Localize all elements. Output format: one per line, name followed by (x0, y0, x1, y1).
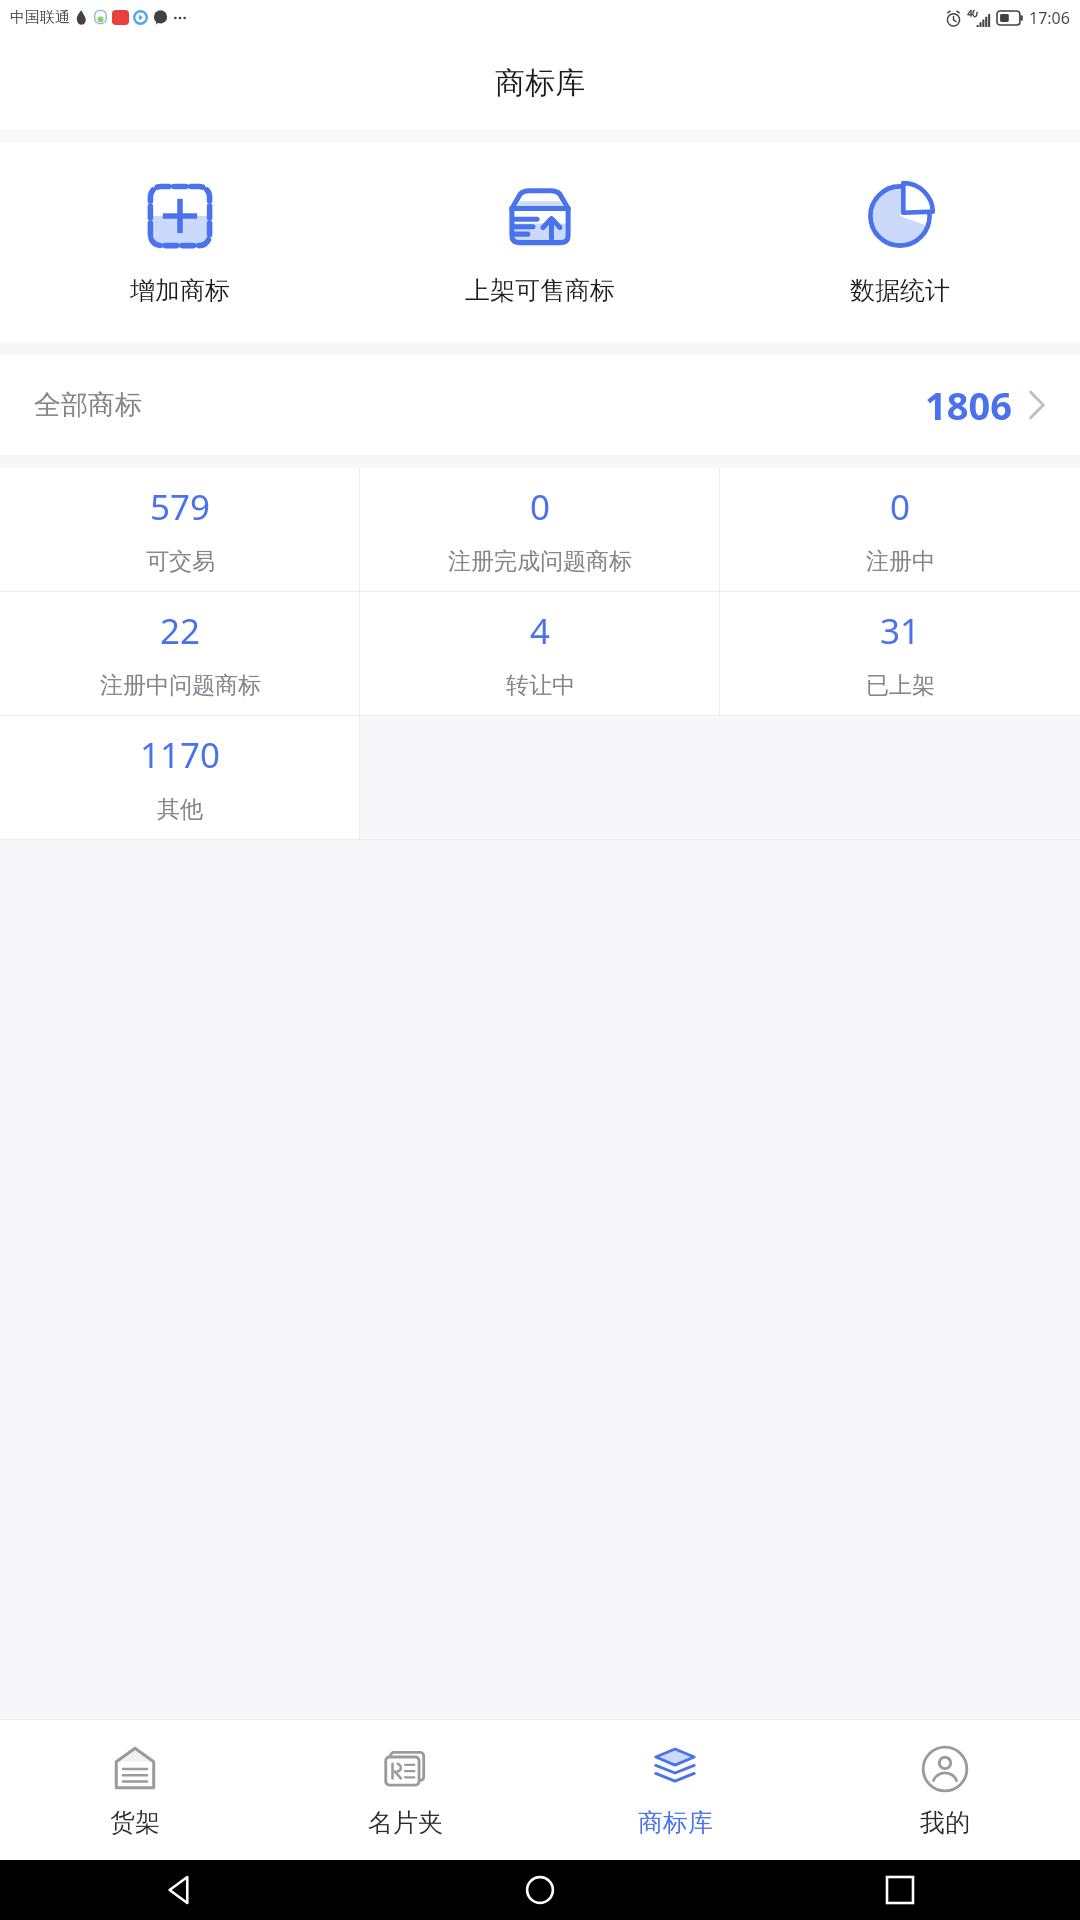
staticText: 31 (880, 607, 921, 655)
staticText: 我的 (920, 1807, 970, 1838)
button[interactable]: Home (360, 1860, 720, 1920)
button[interactable]: 1170 (0, 716, 360, 839)
staticText: 其他 (157, 795, 203, 824)
staticText: 增加商标 (130, 275, 230, 306)
staticText: 注册中问题商标 (100, 671, 261, 700)
staticText: 上架可售商标 (465, 275, 615, 306)
button[interactable]: 货架 (0, 1720, 270, 1860)
staticText: 可交易 (146, 547, 215, 576)
staticText: 商标库 (638, 1807, 713, 1838)
button[interactable]: 579 (0, 468, 360, 591)
button[interactable]: 数据统计 (720, 142, 1080, 342)
button[interactable]: 全部商标 (0, 355, 1080, 455)
staticText: 已上架 (866, 671, 935, 700)
button[interactable]: 上架可售商标 (360, 142, 720, 342)
button[interactable]: 增加商标 (0, 142, 360, 342)
staticText: 商标库 (495, 64, 585, 102)
staticText: 0 (530, 483, 551, 531)
button[interactable]: 0 (720, 468, 1080, 591)
button[interactable]: 4 (360, 592, 720, 715)
staticText: 转让中 (506, 671, 575, 700)
button[interactable]: 名片夹 (270, 1720, 540, 1860)
button[interactable]: 0 (360, 468, 720, 591)
staticText: 579 (150, 483, 211, 531)
staticText: 注册中 (866, 547, 935, 576)
button[interactable]: 商标库 (540, 1720, 810, 1860)
staticText: 数据统计 (850, 275, 950, 306)
staticText: 1170 (140, 731, 221, 779)
staticText: 4 (530, 607, 551, 655)
button[interactable]: Recents (720, 1860, 1080, 1920)
button[interactable]: Back (0, 1860, 360, 1920)
staticText: 0 (890, 483, 911, 531)
staticText: 名片夹 (368, 1807, 443, 1838)
staticText: 货架 (110, 1807, 160, 1838)
button[interactable]: 22 (0, 592, 360, 715)
staticText: 注册完成问题商标 (448, 547, 632, 576)
button[interactable]: 31 (720, 592, 1080, 715)
staticText: 中国联通 (10, 8, 70, 27)
staticText: 17:06 (1029, 7, 1070, 29)
button[interactable]: 我的 (810, 1720, 1080, 1860)
staticText: 全部商标 (34, 388, 142, 422)
staticText: 1806 (925, 379, 1012, 431)
staticText: 22 (160, 607, 201, 655)
